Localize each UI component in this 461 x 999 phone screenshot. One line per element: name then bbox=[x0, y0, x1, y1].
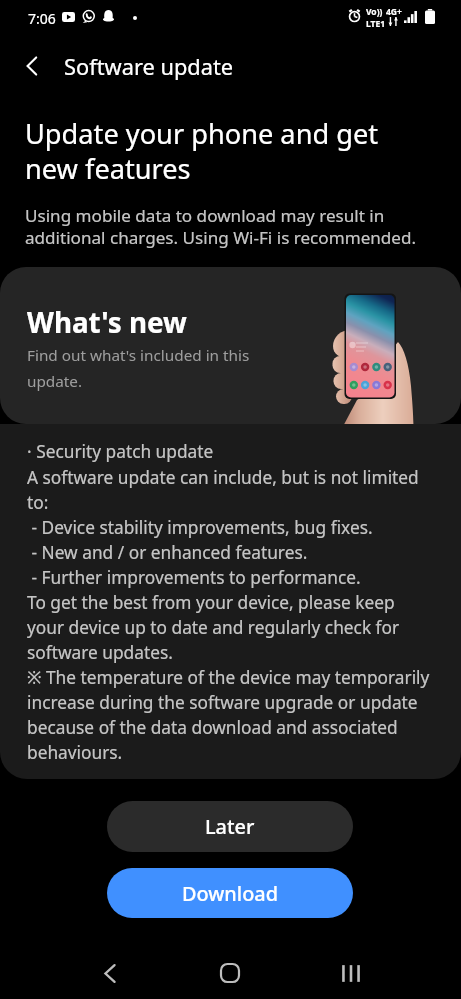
button[interactable]: Back bbox=[86, 949, 134, 997]
staticText: Download bbox=[182, 880, 279, 907]
button[interactable]: Recent apps bbox=[327, 949, 375, 997]
staticText: Update your phone and get new features bbox=[25, 115, 415, 187]
button[interactable]: Home bbox=[206, 949, 254, 997]
staticText: LTE1 bbox=[366, 18, 386, 30]
staticText: Using mobile data to download may result… bbox=[25, 204, 437, 249]
staticText: · Security patch update A software updat… bbox=[27, 440, 430, 764]
staticText: Software update bbox=[64, 52, 234, 82]
button[interactable]: Download bbox=[107, 868, 353, 918]
button[interactable]: What's new bbox=[0, 267, 461, 424]
staticText: Find out what's included in this update. bbox=[27, 345, 250, 391]
staticText: What's new bbox=[27, 303, 187, 341]
staticText: Vo)) bbox=[366, 6, 383, 18]
button[interactable]: Later bbox=[107, 801, 353, 852]
staticText: Later bbox=[205, 813, 255, 840]
staticText: 7:06 bbox=[28, 9, 56, 28]
staticText: 4G+ bbox=[386, 6, 402, 18]
button[interactable]: Navigate up bbox=[8, 42, 56, 90]
